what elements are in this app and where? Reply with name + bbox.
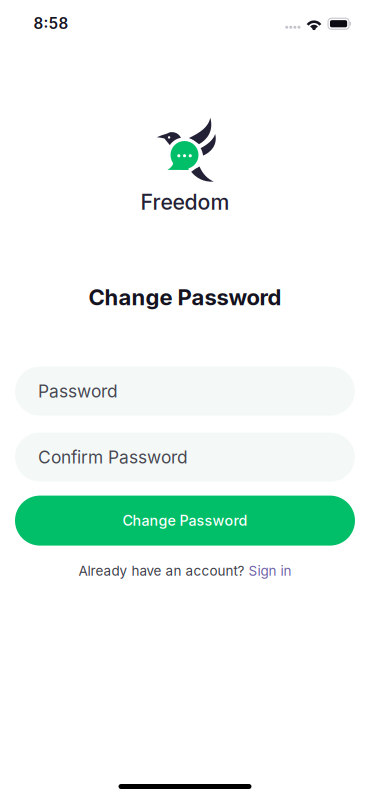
staticText: Change Password	[88, 284, 281, 311]
staticText: Password	[38, 381, 118, 402]
staticText: Sign in	[248, 563, 291, 579]
staticText: Confirm Password	[38, 447, 188, 468]
staticText: Already have an account?	[78, 563, 244, 579]
staticText: Change Password	[122, 512, 247, 529]
button[interactable]: Change Password	[15, 496, 355, 546]
staticText: 8:58	[33, 14, 68, 33]
button[interactable]: Already have an account?	[70, 559, 299, 583]
button[interactable]: Confirm Password	[15, 433, 355, 482]
staticText: Freedom	[140, 189, 229, 215]
button[interactable]: Password	[15, 367, 355, 416]
